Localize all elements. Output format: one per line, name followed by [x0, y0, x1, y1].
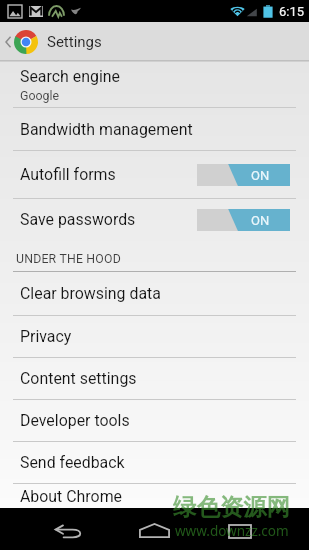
- button[interactable]: About Chrome: [0, 484, 309, 508]
- staticText: Bandwidth management: [20, 120, 193, 139]
- staticText: About Chrome: [20, 487, 123, 506]
- button[interactable]: Back: [0, 508, 103, 550]
- staticText: Privacy: [20, 327, 72, 346]
- button[interactable]: Search engine: [0, 62, 309, 107]
- staticText: Clear browsing data: [20, 284, 161, 303]
- staticText: 绿色资源网: [173, 492, 290, 521]
- staticText: Google: [20, 88, 60, 103]
- button[interactable]: Bandwidth management: [0, 108, 309, 150]
- staticText: Search engine: [20, 67, 120, 86]
- staticText: www.downzz.com: [175, 522, 289, 540]
- staticText: Settings: [47, 33, 102, 51]
- button[interactable]: Autofill forms: [0, 151, 309, 198]
- button[interactable]: Home: [103, 508, 206, 550]
- staticText: Autofill forms: [20, 165, 116, 184]
- staticText: 6:15: [279, 4, 305, 19]
- button[interactable]: Send feedback: [0, 442, 309, 483]
- staticText: Send feedback: [20, 453, 125, 472]
- button[interactable]: Settings: [0, 22, 309, 62]
- button[interactable]: Privacy: [0, 316, 309, 357]
- staticText: Developer tools: [20, 411, 130, 430]
- button[interactable]: Developer tools: [0, 400, 309, 441]
- staticText: Save passwords: [20, 210, 136, 229]
- staticText: ON: [251, 213, 270, 228]
- staticText: ON: [251, 168, 270, 183]
- staticText: UNDER THE HOOD: [16, 252, 121, 266]
- button[interactable]: Save passwords: [0, 199, 309, 240]
- button[interactable]: Clear browsing data: [0, 272, 309, 315]
- button[interactable]: Content settings: [0, 358, 309, 399]
- button[interactable]: Recent apps: [206, 508, 309, 550]
- staticText: Content settings: [20, 369, 137, 388]
